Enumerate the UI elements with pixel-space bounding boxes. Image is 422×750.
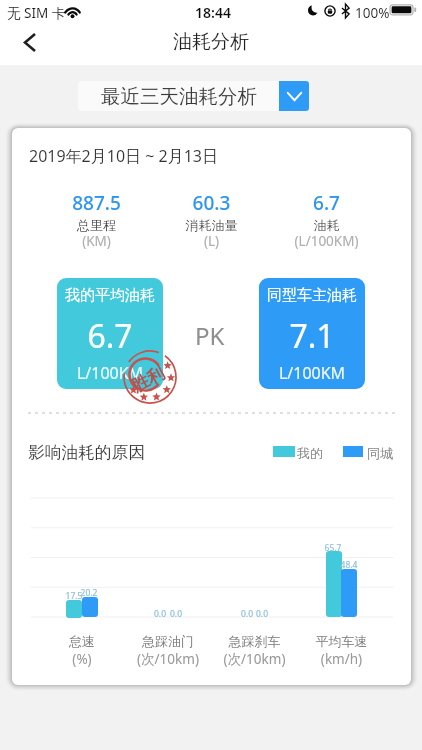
staticText: (KM)	[39, 232, 154, 250]
staticText: (km/h)	[298, 650, 385, 668]
button[interactable]: 我的平均油耗	[57, 278, 163, 389]
staticText: 消耗油量	[154, 217, 269, 233]
button[interactable]: Back	[12, 24, 48, 60]
staticText: 2019年2月10日 ~ 2月13日	[29, 145, 218, 167]
staticText: 60.3	[154, 190, 269, 216]
staticText: 0.0	[140, 608, 180, 619]
staticText: 48.4	[329, 559, 369, 570]
staticText: 怠速	[39, 633, 125, 649]
staticText: 我的	[297, 445, 323, 461]
staticText: 同型车主油耗	[259, 286, 365, 305]
staticText: (L)	[154, 232, 269, 250]
staticText: 0.0	[242, 608, 282, 619]
staticText: 油耗	[269, 217, 384, 233]
button[interactable]: 同型车主油耗	[259, 278, 365, 389]
staticText: L/100KM	[259, 362, 365, 384]
staticText: 最近三天油耗分析	[101, 84, 257, 109]
staticText: 0.0	[227, 608, 267, 619]
staticText: (%)	[39, 650, 125, 668]
staticText: L/100KM	[57, 362, 163, 384]
staticText: 887.5	[39, 190, 154, 216]
staticText: PK	[195, 319, 225, 352]
staticText: 胜利	[128, 362, 168, 397]
staticText: (L/100KM)	[269, 232, 384, 250]
staticText: 急踩刹车	[211, 633, 298, 649]
staticText: 油耗分析	[0, 30, 422, 54]
staticText: 影响油耗的原因	[28, 442, 145, 463]
staticText: 平均车速	[298, 633, 385, 649]
staticText: 无 SIM 卡	[7, 4, 66, 22]
staticText: 17.5	[54, 590, 94, 601]
staticText: 18:44	[195, 3, 231, 22]
staticText: 6.7	[57, 314, 163, 358]
staticText: 我的平均油耗	[57, 286, 163, 305]
staticText: 20.2	[69, 587, 109, 598]
staticText: 7.1	[259, 314, 365, 358]
staticText: 65.7	[313, 542, 353, 553]
staticText: (次/10km)	[125, 650, 211, 668]
staticText: (次/10km)	[211, 650, 298, 668]
staticText: 100%	[355, 4, 390, 22]
staticText: 6.7	[269, 190, 384, 216]
staticText: 急踩油门	[125, 633, 211, 649]
staticText: 0.0	[156, 608, 196, 619]
staticText: 总里程	[39, 217, 154, 233]
staticText: 同城	[367, 445, 393, 461]
button[interactable]: 最近三天油耗分析	[78, 81, 309, 111]
